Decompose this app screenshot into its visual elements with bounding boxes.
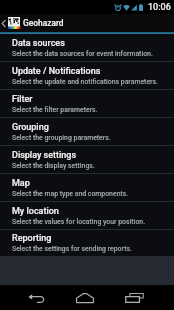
button[interactable]: Map [0, 174, 174, 201]
button[interactable]: Recent apps [115, 285, 154, 310]
button[interactable]: Reporting [0, 230, 174, 256]
staticText: Select the data sources for event inform… [12, 50, 153, 58]
staticText: Map [12, 178, 30, 189]
staticText: Select the display settings. [12, 162, 95, 170]
staticText: Data sources [12, 38, 65, 49]
staticText: Select the values for locating your posi… [12, 218, 146, 226]
button[interactable]: Display settings [0, 146, 174, 173]
staticText: Select the update and notifications para… [12, 78, 158, 86]
staticText: Select the map type and components. [12, 190, 129, 198]
staticText: Display settings [12, 150, 77, 161]
staticText: Select the settings for sending reports. [12, 245, 132, 253]
staticText: Select the grouping parameters. [12, 134, 111, 142]
staticText: Geohazard [23, 18, 64, 28]
staticText: Select the filter parameters. [12, 106, 98, 114]
button[interactable]: Filter [0, 90, 174, 117]
button[interactable]: My location [0, 202, 174, 229]
staticText: Filter [12, 94, 33, 105]
button[interactable]: Home [65, 285, 105, 310]
other: Navigate up [1, 19, 6, 28]
staticText: Reporting [12, 233, 52, 244]
staticText: Update / Notifications [12, 66, 101, 77]
button[interactable]: Grouping [0, 118, 174, 145]
button[interactable]: Update / Notifications [0, 62, 174, 89]
button[interactable]: Data sources [0, 34, 174, 61]
button[interactable]: Navigate up [0, 14, 174, 32]
staticText: My location [12, 206, 59, 217]
staticText: 10:06 [148, 2, 171, 13]
button[interactable]: Back [16, 285, 55, 310]
staticText: Grouping [12, 122, 49, 133]
